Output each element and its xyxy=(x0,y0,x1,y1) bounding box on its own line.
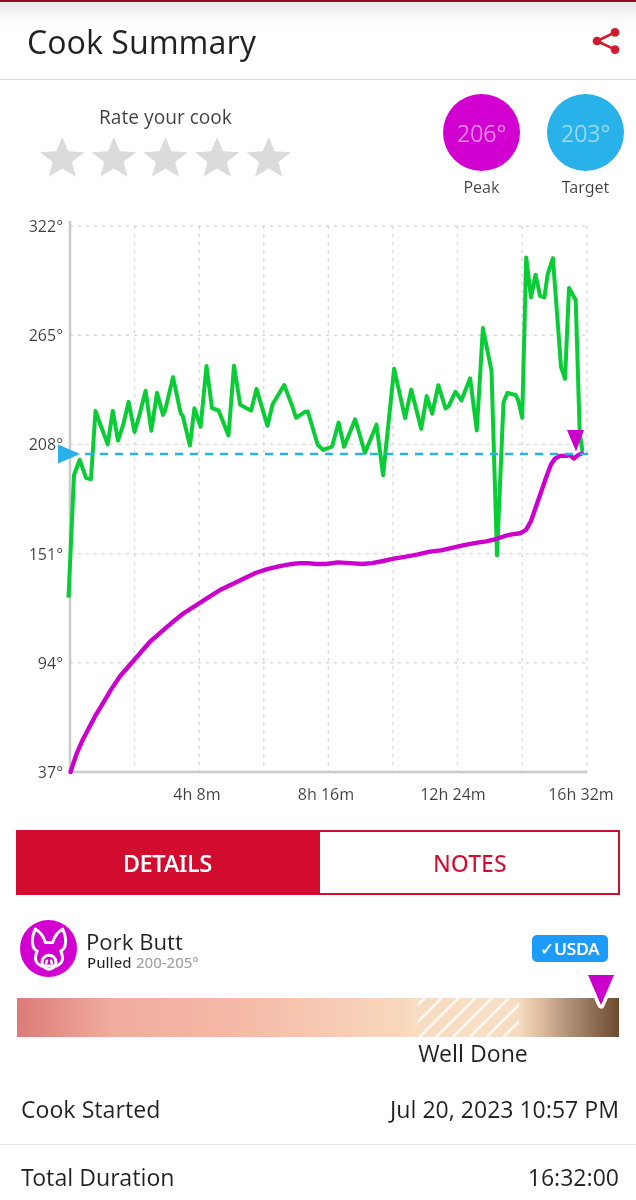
staticText: 208° xyxy=(0,433,63,455)
staticText: 37° xyxy=(0,761,63,783)
button[interactable]: DETAILS xyxy=(16,830,320,895)
staticText: Target xyxy=(547,176,624,198)
staticText: 322° xyxy=(0,215,63,237)
staticText: 12h 24m xyxy=(383,783,523,805)
staticText: DETAILS xyxy=(123,847,213,878)
staticText: Jul 20, 2023 10:57 PM xyxy=(165,1093,619,1124)
staticText: 16:32:00 xyxy=(179,1161,619,1192)
staticText: 203° xyxy=(561,117,611,148)
staticText: Cook Summary xyxy=(27,20,257,64)
button[interactable]: 206° xyxy=(443,94,520,171)
button[interactable]: Cook Started xyxy=(21,1075,619,1141)
button[interactable]: Pork Butt xyxy=(0,915,636,985)
staticText: Rate your cook xyxy=(41,104,290,130)
button[interactable]: 203° xyxy=(547,94,624,171)
staticText: 265° xyxy=(0,324,63,346)
button[interactable]: NOTES xyxy=(320,830,620,895)
staticText: Pork Butt xyxy=(86,926,183,956)
button[interactable]: ✓USDA xyxy=(540,937,600,960)
staticText: 94° xyxy=(0,652,63,674)
staticText: 16h 32m xyxy=(511,783,636,805)
staticText: 8h 16m xyxy=(256,783,396,805)
button[interactable]: Total Duration xyxy=(21,1143,619,1200)
staticText: Pulled xyxy=(87,952,136,972)
staticText: 200-205° xyxy=(136,952,199,972)
staticText: 206° xyxy=(457,117,507,148)
staticText: Total Duration xyxy=(21,1161,175,1192)
staticText: Well Done xyxy=(403,1037,543,1068)
staticText: Peak xyxy=(443,176,520,198)
button[interactable]: Share xyxy=(580,15,632,67)
button[interactable]: Rate your cook xyxy=(41,104,290,184)
staticText: 151° xyxy=(0,543,63,565)
staticText: 4h 8m xyxy=(127,783,267,805)
staticText: ✓USDA xyxy=(540,937,600,960)
staticText: NOTES xyxy=(433,847,507,878)
staticText: Cook Started xyxy=(21,1093,161,1124)
